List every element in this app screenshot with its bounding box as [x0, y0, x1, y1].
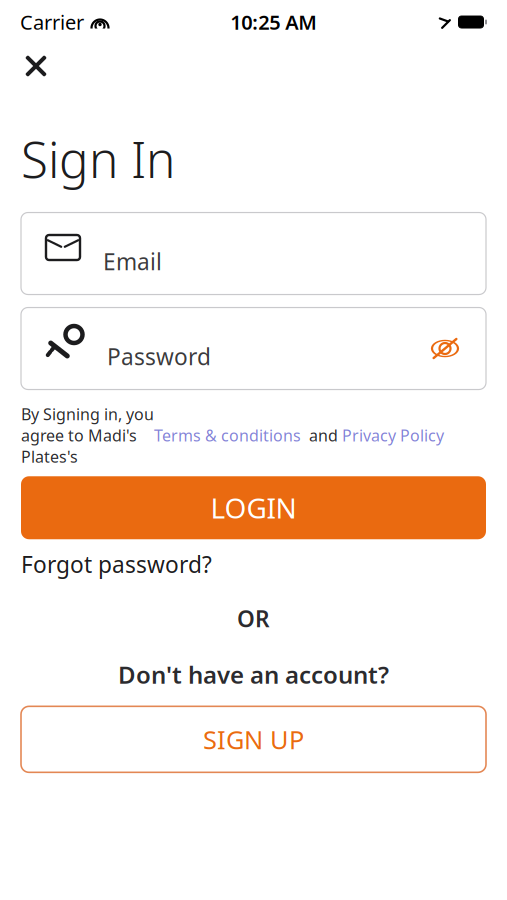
staticText: LOGIN [210, 489, 296, 526]
staticText: By Signing in, you agree to Madi's Plate… [21, 403, 154, 467]
staticText: 10:25 AM [230, 9, 317, 35]
button[interactable]: LOGIN [21, 476, 486, 539]
staticText: OR [237, 603, 270, 633]
button[interactable]: Forgot password? [21, 549, 212, 579]
staticText: Sign In [21, 126, 175, 191]
staticText: SIGN UP [203, 722, 304, 756]
staticText: Email [103, 246, 162, 277]
staticText: Don't have an account? [118, 658, 389, 690]
staticText: Terms & conditions [154, 425, 301, 446]
staticText: and [301, 425, 342, 446]
button[interactable]: SIGN UP [21, 706, 486, 772]
button[interactable]: Show password [422, 327, 468, 369]
button[interactable]: Close [14, 44, 58, 88]
staticText: Carrier [20, 9, 84, 35]
staticText: Forgot password? [21, 549, 212, 579]
button[interactable]: Terms & conditions [154, 425, 301, 446]
staticText: Privacy Policy [342, 425, 444, 446]
button[interactable]: Privacy Policy [342, 425, 444, 446]
staticText: Password [107, 341, 211, 372]
